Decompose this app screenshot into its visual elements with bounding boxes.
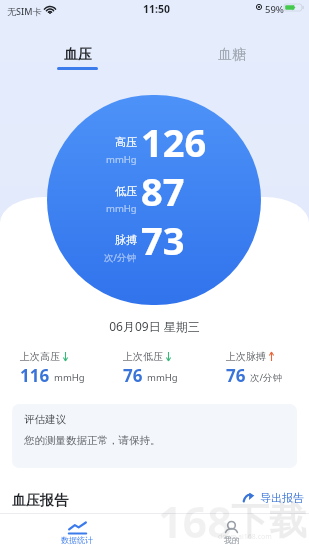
button[interactable]: 血压 [39, 24, 116, 70]
staticText: 87 [141, 165, 185, 217]
staticText: 数据统计 [61, 535, 93, 545]
staticText: mmHg [54, 371, 85, 384]
button[interactable]: 评估建议 [12, 404, 297, 468]
staticText: 血压 [64, 46, 92, 64]
staticText: 低压 [115, 184, 137, 198]
staticText: 您的测量数据正常，请保持。 [24, 434, 161, 447]
button[interactable]: 数据统计 [0, 514, 154, 550]
staticText: 血糖 [218, 46, 246, 64]
staticText: 下载 [231, 497, 307, 545]
staticText: 脉搏 [115, 233, 137, 247]
staticText: mmHg [106, 153, 137, 166]
staticText: 06月09日 星期三 [0, 318, 309, 334]
button[interactable]: 上次脉搏 [226, 350, 309, 387]
button[interactable]: 导出报告 [242, 491, 304, 505]
staticText: 上次低压 [123, 350, 163, 363]
staticText: 次/分钟 [104, 251, 137, 264]
staticText: 血压报告 [12, 492, 68, 510]
staticText: 高压 [115, 135, 137, 149]
staticText: mmHg [106, 202, 137, 215]
staticText: 导出报告 [260, 491, 304, 505]
staticText: 76 [123, 364, 143, 387]
button[interactable]: 上次高压 [20, 350, 123, 387]
staticText: 126 [141, 116, 207, 168]
staticText: 无SIM卡 [7, 5, 42, 17]
staticText: 59% [265, 3, 284, 16]
button[interactable]: 血糖 [193, 24, 270, 70]
staticText: 我的 [224, 535, 240, 545]
staticText: mmHg [147, 371, 178, 384]
staticText: 116 [20, 364, 50, 387]
staticText: 11:50 [143, 2, 170, 16]
staticText: 评估建议 [24, 413, 66, 426]
button[interactable]: 上次低压 [123, 350, 226, 387]
staticText: down.ai168.com [218, 532, 272, 542]
staticText: 73 [141, 214, 185, 266]
button[interactable]: 我的 [154, 514, 309, 550]
staticText: 上次脉搏 [226, 350, 266, 363]
staticText: 上次高压 [20, 350, 60, 363]
staticText: 168 [158, 492, 232, 550]
staticText: 次/分钟 [250, 371, 283, 384]
staticText: 76 [226, 364, 246, 387]
